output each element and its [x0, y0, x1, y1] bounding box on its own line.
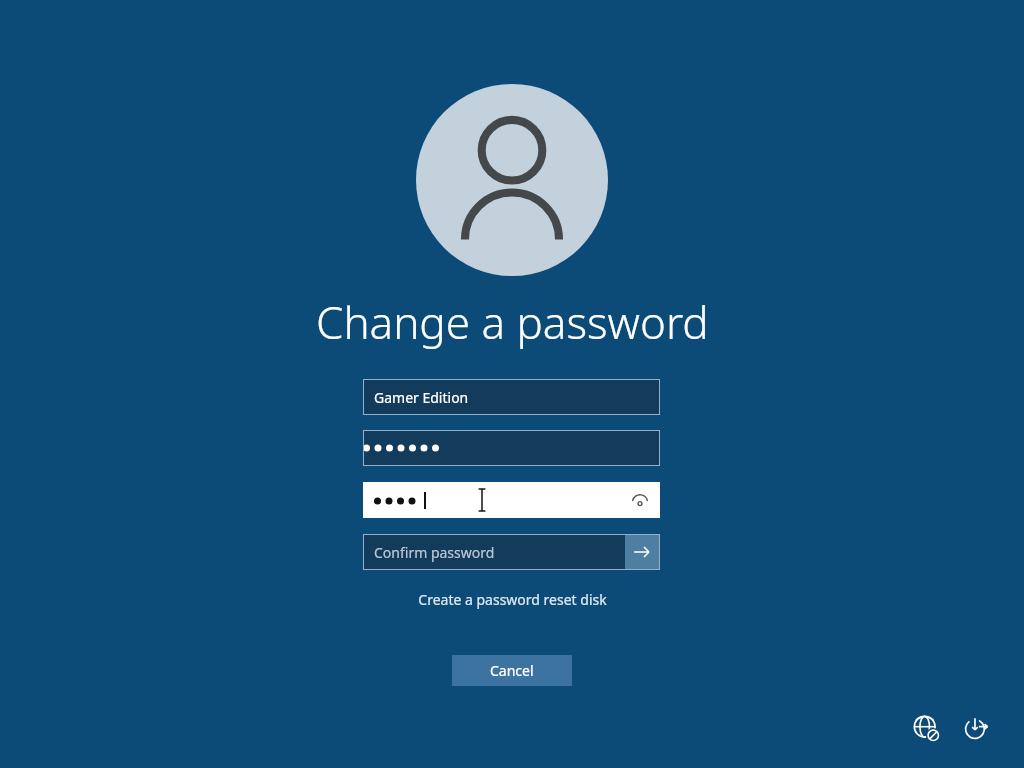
staticText: Create a password reset disk [418, 590, 607, 609]
button[interactable]: Network [906, 708, 946, 748]
staticText: Cancel [490, 661, 534, 680]
staticText: Gamer Edition [374, 388, 469, 407]
button[interactable]: Confirm password [363, 534, 660, 570]
button[interactable]: Cancel [452, 655, 572, 686]
button[interactable]: Submit [625, 535, 659, 569]
button[interactable]: Reveal password [630, 490, 650, 510]
button[interactable]: Power [956, 708, 996, 748]
button[interactable] [363, 430, 660, 466]
button[interactable]: Reveal password [363, 482, 660, 518]
staticText: Change a password [316, 292, 709, 352]
staticText: Confirm password [374, 543, 495, 562]
button[interactable]: Create a password reset disk [414, 586, 611, 613]
button[interactable]: Gamer Edition [363, 379, 660, 415]
